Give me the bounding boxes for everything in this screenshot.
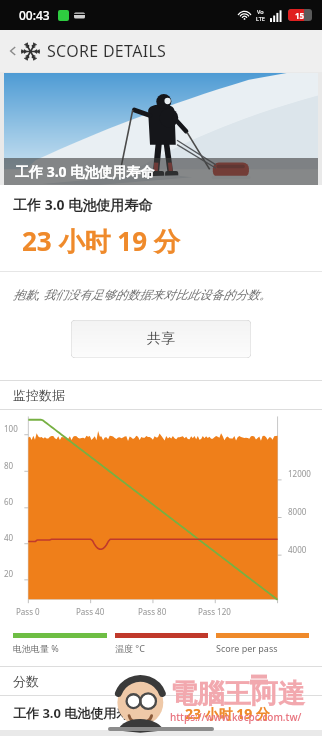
button[interactable]: 工作 3.0 电池使用寿命: [4, 73, 318, 185]
staticText: 4000: [288, 544, 307, 555]
staticText: 工作 3.0 电池使用寿命: [13, 195, 153, 214]
button[interactable]: 电池电量 %: [13, 633, 107, 654]
staticText: Pass 80: [138, 606, 167, 617]
staticText: Pass 40: [76, 606, 105, 617]
staticText: 抱歉, 我们没有足够的数据来对比此设备的分数。: [13, 286, 272, 302]
staticText: 60: [4, 496, 14, 507]
staticText: 共享: [147, 330, 175, 348]
staticText: 温度 °C: [115, 642, 145, 654]
staticText: 监控数据: [13, 387, 65, 403]
staticText: 工作 3.0 电池使用寿命: [15, 162, 155, 181]
button[interactable]: 温度 °C: [115, 633, 208, 654]
staticText: Score per pass: [216, 642, 278, 654]
staticText: SCORE DETAILS: [47, 40, 167, 62]
staticText: 电池电量 %: [13, 642, 59, 654]
staticText: https://www.kocpc.com.tw/: [170, 710, 302, 724]
staticText: 23 小时 19 分: [22, 223, 180, 259]
staticText: 80: [4, 460, 14, 471]
staticText: Vo: [257, 8, 264, 15]
staticText: 12000: [288, 468, 311, 479]
staticText: 100: [4, 423, 18, 434]
button[interactable]: Back: [4, 36, 171, 66]
button[interactable]: 共享: [71, 320, 251, 358]
staticText: Pass 0: [16, 606, 40, 617]
staticText: 23 小时 19 分: [185, 704, 270, 723]
other: Back: [8, 46, 18, 56]
staticText: Pass 120: [198, 606, 231, 617]
staticText: 電腦王阿達: [170, 677, 305, 711]
staticText: 20: [4, 568, 14, 579]
staticText: 分数: [13, 673, 39, 689]
staticText: LTE: [256, 15, 265, 22]
button[interactable]: Score per pass: [216, 633, 309, 654]
staticText: 15: [295, 10, 305, 21]
staticText: 40: [4, 532, 14, 543]
staticText: 8000: [288, 506, 307, 517]
staticText: 00:43: [19, 7, 50, 23]
staticText: 工作 3.0 电池使用寿命: [13, 704, 143, 722]
